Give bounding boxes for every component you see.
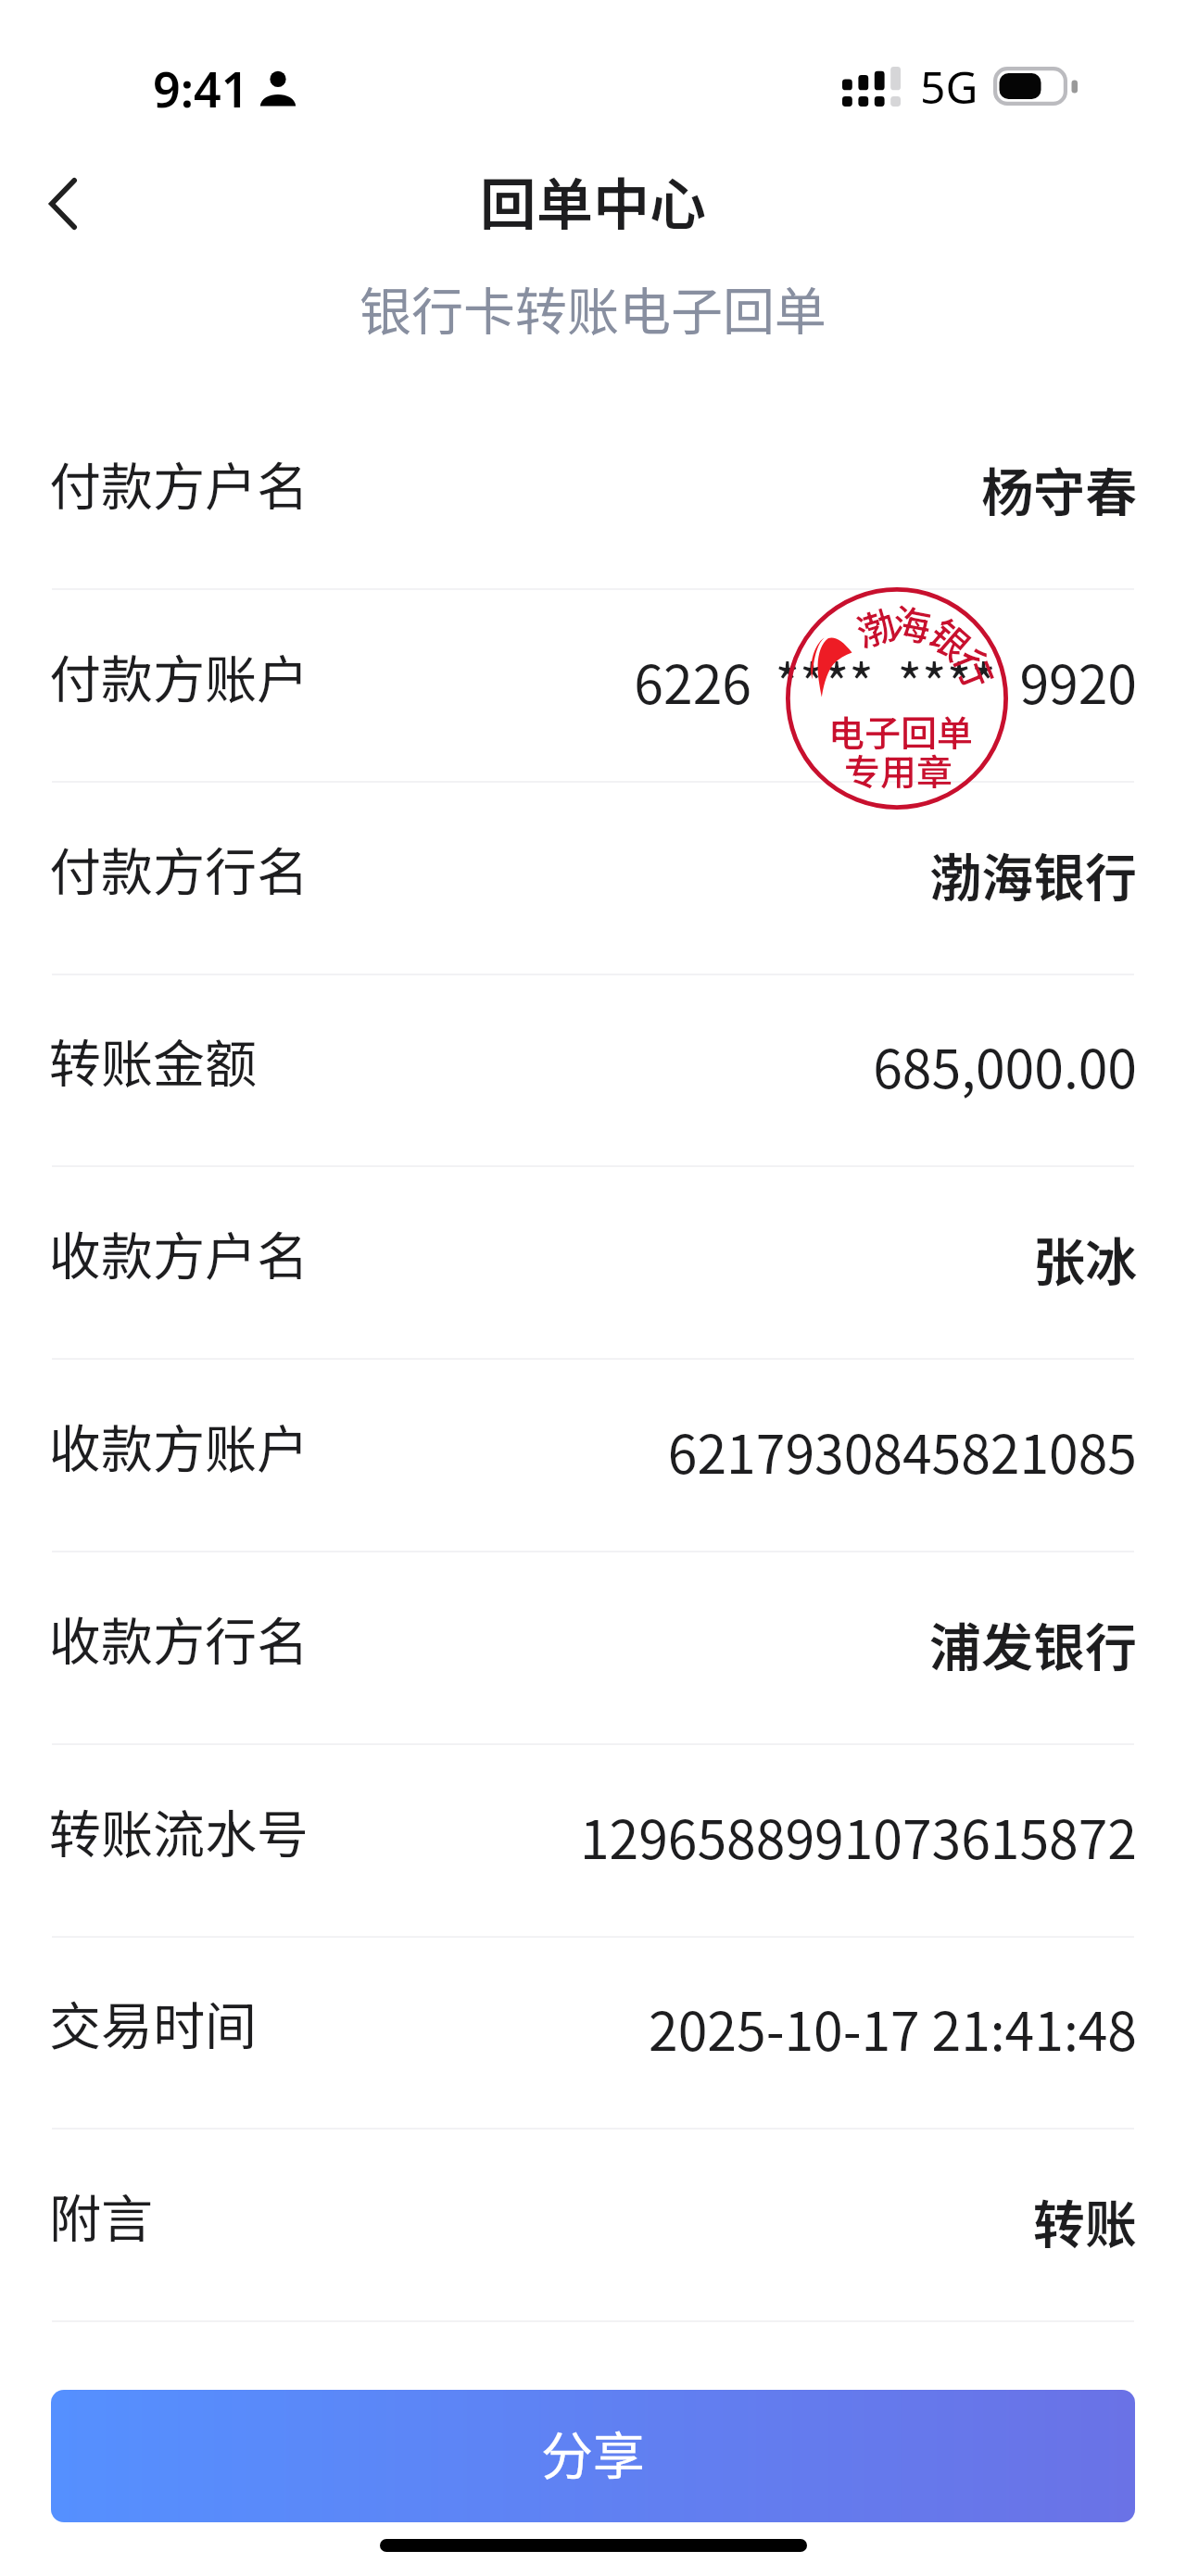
staticText: 收款方户名 [49, 1215, 309, 1290]
button[interactable]: 收款方账户 [0, 1360, 1186, 1552]
staticText: 收款方行名 [49, 1601, 309, 1676]
staticText: 付款方户名 [49, 446, 309, 521]
button[interactable]: 付款方账户 [0, 590, 1186, 783]
staticText: 2025-10-17 21:41:48 [649, 1990, 1137, 2067]
button[interactable]: Back [12, 153, 114, 255]
staticText: 海 [888, 592, 936, 652]
staticText: 收款方账户 [49, 1408, 309, 1483]
staticText: 转账 [1033, 2183, 1137, 2258]
staticText: 渤海银行 [929, 836, 1137, 911]
button[interactable]: 付款方行名 [0, 783, 1186, 975]
button[interactable]: 收款方行名 [0, 1552, 1186, 1745]
button[interactable]: 收款方户名 [0, 1167, 1186, 1360]
staticText: 浦发银行 [929, 1606, 1137, 1681]
button[interactable]: 分享 [51, 2390, 1135, 2522]
button[interactable]: 转账流水号 [0, 1745, 1186, 1938]
staticText: 6217930845821085 [667, 1413, 1137, 1489]
staticText: 6226 **** **** 9920 [634, 643, 1137, 720]
staticText: 分享 [541, 2415, 645, 2490]
staticText: 行 [944, 640, 1009, 695]
staticText: 银行卡转账电子回单 [0, 270, 1186, 346]
staticText: 转账流水号 [49, 1793, 309, 1868]
staticText: 9:41 [153, 56, 249, 121]
button[interactable]: 附言 [0, 2130, 1186, 2322]
staticText: 685,000.00 [873, 1027, 1137, 1104]
button[interactable]: 交易时间 [0, 1937, 1186, 2130]
staticText: 1296588991073615872 [579, 1798, 1137, 1875]
button[interactable]: 转账金额 [0, 974, 1186, 1167]
staticText: 附言 [49, 2178, 153, 2253]
staticText: 5G [920, 57, 978, 117]
staticText: 杨守春 [981, 451, 1137, 526]
staticText: 渤 [849, 594, 901, 657]
button[interactable]: 付款方户名 [0, 397, 1186, 590]
staticText: 交易时间 [49, 1985, 257, 2060]
staticText: 电子回单 [828, 705, 974, 757]
staticText: 银 [919, 605, 983, 671]
staticText: 张冰 [1033, 1221, 1137, 1296]
staticText: 回单中心 [0, 159, 1186, 241]
staticText: 转账金额 [49, 1023, 257, 1098]
staticText: 付款方账户 [49, 638, 309, 713]
staticText: 付款方行名 [49, 831, 309, 906]
staticText: 专用章 [844, 744, 953, 796]
